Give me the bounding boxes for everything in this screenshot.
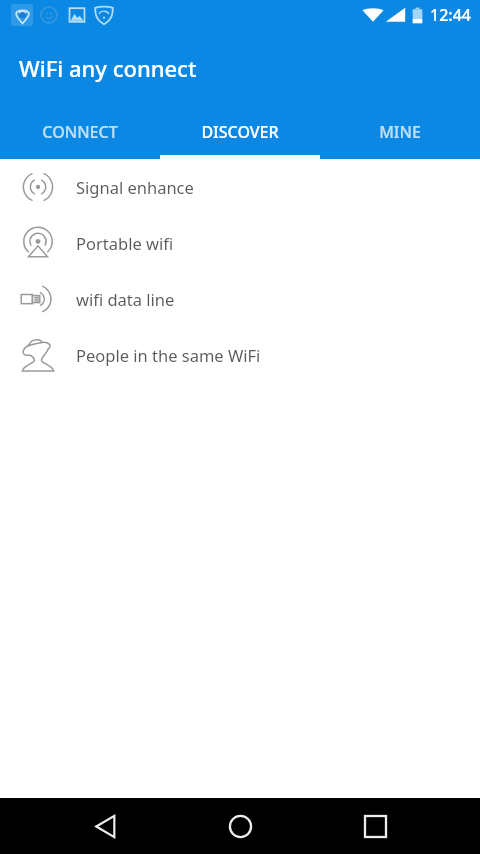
staticText: CONNECT xyxy=(42,121,118,143)
button[interactable]: Recents xyxy=(340,798,410,854)
staticText: Portable wifi xyxy=(76,232,174,254)
button[interactable]: CONNECT xyxy=(0,105,160,159)
staticText: wifi data line xyxy=(76,288,175,310)
button[interactable]: Signal enhance xyxy=(0,159,480,215)
button[interactable]: DISCOVER xyxy=(160,105,320,159)
staticText: DISCOVER xyxy=(201,121,279,143)
button[interactable]: Portable wifi xyxy=(0,215,480,271)
button[interactable]: People in the same WiFi xyxy=(0,327,480,383)
button[interactable]: wifi data line xyxy=(0,271,480,327)
staticText: 12:44 xyxy=(430,4,471,26)
button[interactable]: Home xyxy=(205,798,275,854)
staticText: People in the same WiFi xyxy=(76,344,261,366)
button[interactable]: MINE xyxy=(320,105,480,159)
staticText: WiFi any connect xyxy=(19,53,197,83)
staticText: MINE xyxy=(379,121,421,143)
button[interactable]: Back xyxy=(70,798,140,854)
staticText: Signal enhance xyxy=(76,176,194,198)
